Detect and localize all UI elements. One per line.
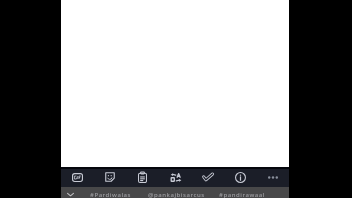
staticText: @pankajbisarcus: [148, 191, 205, 198]
button[interactable]: More options: [256, 167, 289, 187]
button[interactable]: Translate: [157, 167, 190, 187]
button[interactable]: Spell check: [190, 167, 223, 187]
staticText: #pandirawaal: [219, 191, 265, 198]
button[interactable]: @pankajbisarcus: [144, 187, 209, 198]
button[interactable]: Info: [223, 167, 256, 187]
button[interactable]: Clipboard: [125, 167, 157, 187]
button[interactable]: #pandirawaal: [209, 187, 274, 198]
button[interactable]: #Pardiwalas: [78, 187, 144, 198]
button[interactable]: Stickers: [93, 167, 125, 187]
button[interactable]: Collapse suggestions: [61, 187, 80, 198]
staticText: #Pardiwalas: [90, 191, 132, 198]
button[interactable]: GIF: [61, 167, 93, 187]
